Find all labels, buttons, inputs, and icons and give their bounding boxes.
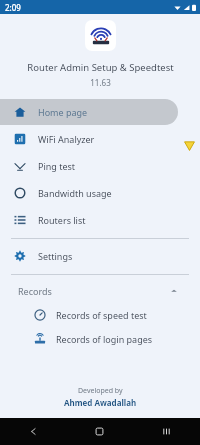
button[interactable]: Premium (180, 136, 198, 154)
staticText: Records of speed test (56, 309, 147, 321)
staticText: Settings (38, 250, 73, 262)
staticText: Records of login pages (56, 333, 153, 345)
staticText: Home page (38, 106, 88, 118)
staticText: Router Admin Setup & Speedtest (27, 61, 174, 74)
button[interactable]: Records of login pages (0, 327, 200, 351)
staticText: Records (18, 285, 52, 297)
button[interactable]: Home page (0, 99, 178, 125)
button[interactable]: Records of speed test (0, 303, 200, 327)
button[interactable]: WiFi Analyzer (0, 126, 200, 152)
staticText: Routers list (38, 214, 86, 226)
staticText: 11.63 (90, 77, 111, 88)
button[interactable]: Recent apps (133, 418, 200, 445)
staticText: 2:09 (5, 2, 21, 13)
button[interactable]: Home (66, 418, 133, 445)
button[interactable]: Settings (0, 243, 200, 269)
staticText: Developed by (78, 386, 123, 396)
staticText: Ping test (38, 160, 76, 172)
button[interactable]: Back (0, 418, 66, 445)
staticText: Bandwidth usage (38, 187, 112, 199)
staticText: WiFi Analyzer (38, 133, 95, 145)
staticText: Ahmed Awadallah (64, 397, 137, 408)
button[interactable]: Bandwidth usage (0, 180, 200, 206)
button[interactable]: Ping test (0, 153, 200, 179)
button[interactable]: Collapse Records (0, 279, 200, 303)
button[interactable]: Routers list (0, 207, 200, 233)
